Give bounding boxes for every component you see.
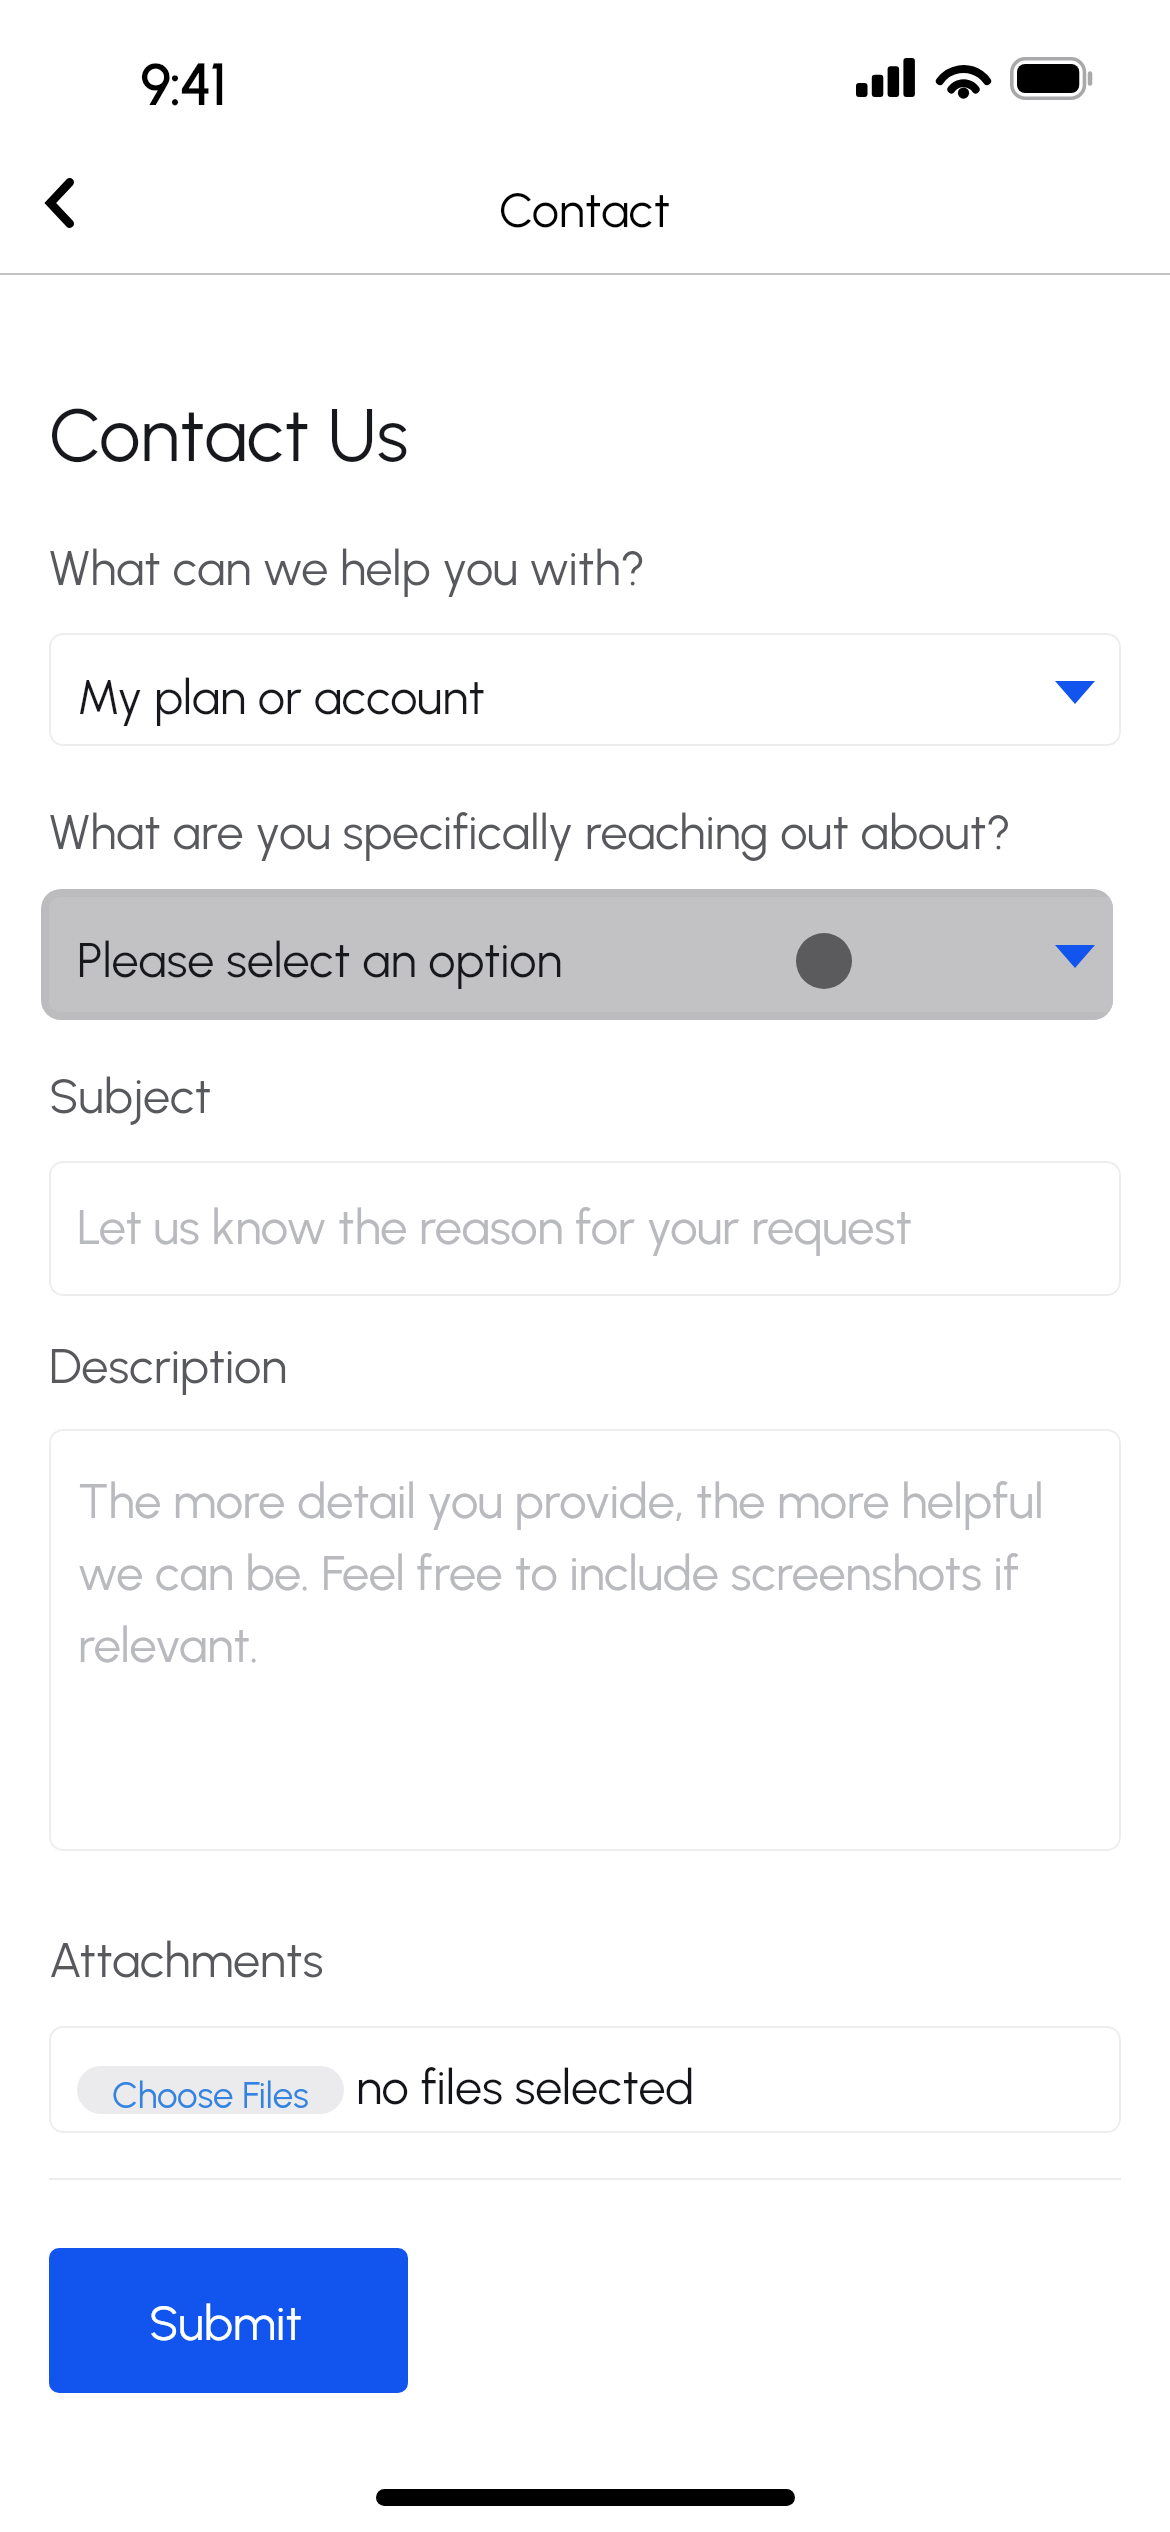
staticText: Let us know the reason for your request (77, 1198, 912, 1256)
staticText: Subject (49, 1067, 212, 1125)
staticText: Submit (149, 2294, 302, 2352)
staticText: 9:41 (141, 51, 226, 118)
button[interactable]: My plan or account (49, 633, 1121, 746)
button[interactable]: Back (0, 144, 120, 261)
button[interactable]: Submit (49, 2248, 408, 2393)
staticText: What are you specifically reaching out a… (49, 803, 1011, 861)
button[interactable]: Let us know the reason for your request (49, 1161, 1121, 1296)
staticText: Please select an option (77, 931, 563, 989)
staticText: Contact (499, 181, 671, 239)
staticText: Description (49, 1337, 288, 1395)
staticText: Contact Us (49, 391, 409, 480)
button[interactable]: The more detail you provide, the more he… (49, 1429, 1121, 1851)
button[interactable]: Choose Files (77, 2066, 344, 2114)
staticText: Attachments (49, 1931, 324, 1989)
staticText: The more detail you provide, the more he… (78, 1472, 1079, 1675)
button[interactable]: Please select an option (41, 889, 1113, 1020)
staticText: no files selected (356, 2058, 695, 2116)
staticText: Choose Files (112, 2073, 309, 2114)
staticText: What can we help you with? (49, 539, 645, 597)
staticText: My plan or account (77, 668, 485, 726)
